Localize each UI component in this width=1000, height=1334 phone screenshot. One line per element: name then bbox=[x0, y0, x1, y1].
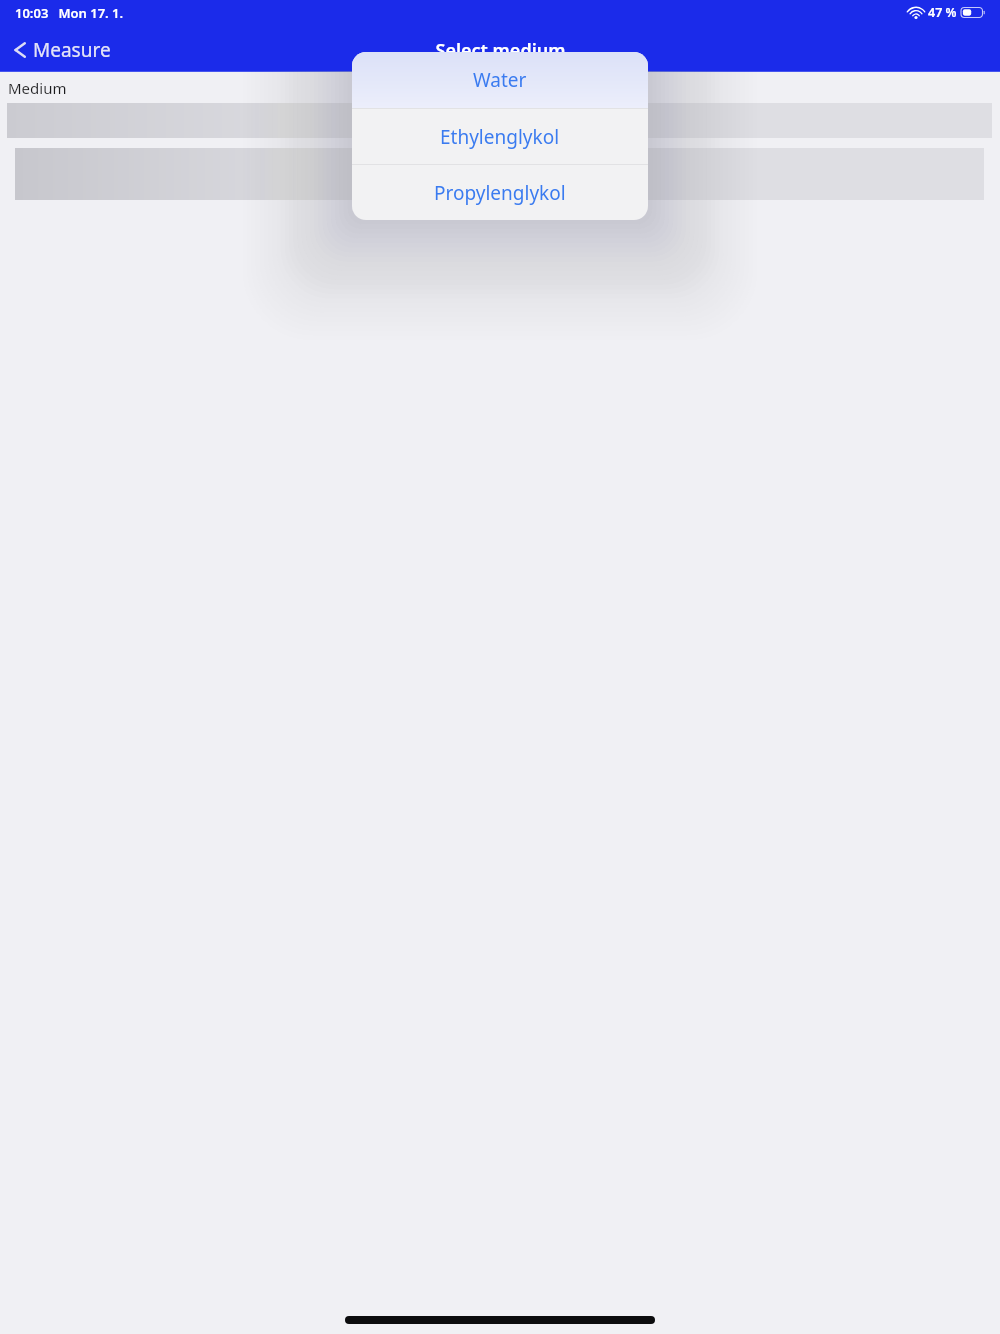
staticText: Measure bbox=[33, 37, 111, 63]
button[interactable]: Propylenglykol bbox=[352, 165, 648, 220]
button[interactable]: Back bbox=[8, 34, 115, 66]
staticText: 10:03 Mon 17. 1. bbox=[15, 4, 124, 22]
button[interactable] bbox=[15, 148, 984, 200]
staticText: Select medium bbox=[435, 38, 566, 63]
button[interactable] bbox=[7, 103, 992, 138]
button[interactable]: Ethylenglykol bbox=[352, 109, 648, 164]
staticText: Medium bbox=[8, 78, 67, 98]
staticText: Ethylenglykol bbox=[440, 124, 560, 150]
staticText: Propylenglykol bbox=[434, 180, 566, 206]
staticText: 47 % bbox=[928, 4, 957, 21]
other: Back bbox=[12, 38, 28, 62]
button[interactable]: Water bbox=[352, 52, 648, 108]
staticText: Water bbox=[473, 67, 527, 93]
